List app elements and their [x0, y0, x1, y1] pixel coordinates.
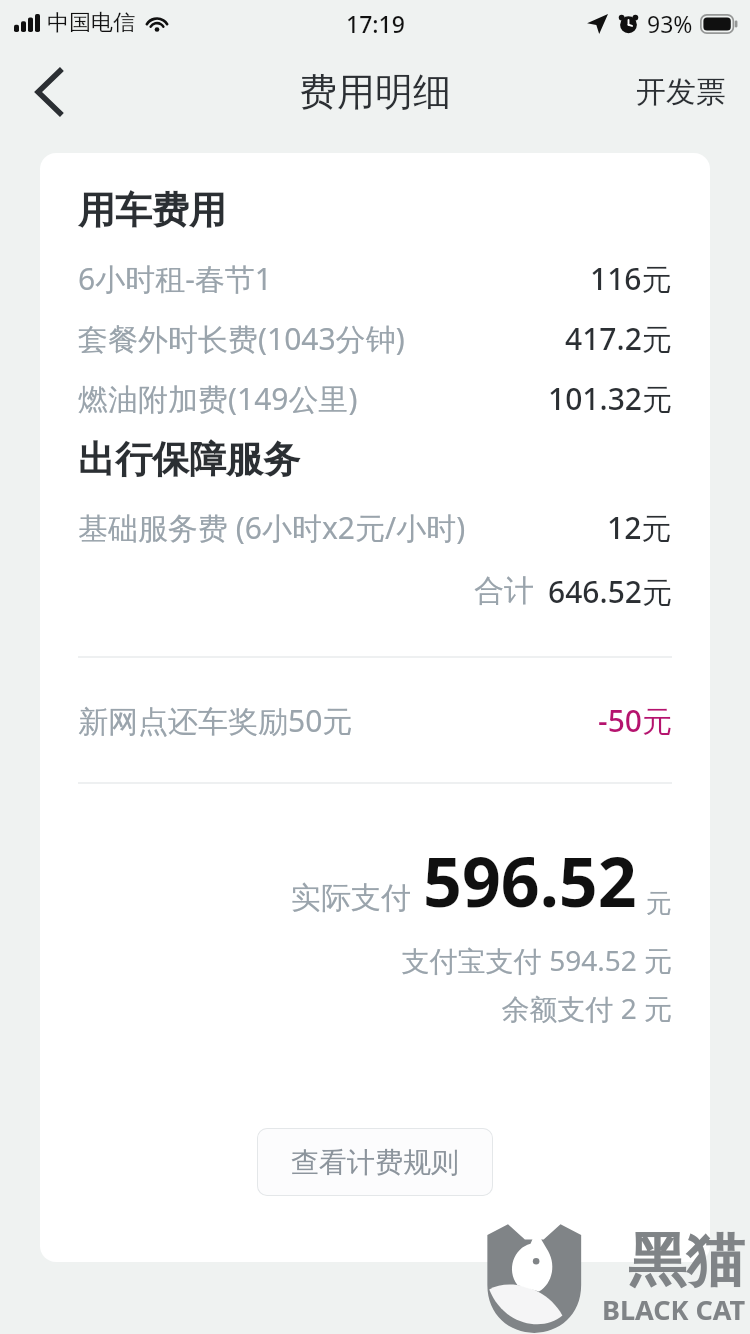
staticText: -50元 — [598, 700, 672, 741]
staticText: 实际支付 — [291, 879, 411, 917]
staticText: 新网点还车奖励50元 — [78, 700, 598, 741]
staticText: 余额支付 2 元 — [78, 989, 672, 1027]
staticText: 417.2元 — [565, 318, 672, 359]
staticText: 6小时租-春节1 — [78, 258, 580, 299]
staticText: 费用明细 — [299, 68, 451, 116]
staticText: BLACK CAT — [602, 1291, 746, 1328]
staticText: 合计 — [474, 572, 534, 610]
staticText: 查看计费规则 — [291, 1145, 459, 1180]
button[interactable]: Back — [18, 61, 80, 123]
staticText: 中国电信 — [47, 9, 135, 37]
staticText: 116元 — [590, 258, 672, 299]
staticText: 93% — [647, 8, 693, 39]
button[interactable]: 开发票 — [630, 65, 732, 119]
staticText: 用车费用 — [78, 187, 226, 234]
staticText: 596.52 — [423, 834, 637, 927]
staticText: 黑猫 — [628, 1224, 744, 1297]
staticText: 出行保障服务 — [78, 436, 300, 483]
staticText: 开发票 — [636, 73, 726, 111]
staticText: 套餐外时长费(1043分钟) — [78, 318, 555, 359]
button[interactable]: 查看计费规则 — [257, 1128, 493, 1196]
staticText: 基础服务费 (6小时x2元/小时) — [78, 507, 597, 548]
staticText: 101.32元 — [548, 378, 672, 419]
staticText: 12元 — [607, 507, 672, 548]
staticText: 支付宝支付 594.52 元 — [78, 941, 672, 979]
staticText: 646.52元 — [548, 571, 672, 611]
staticText: 元 — [646, 887, 672, 920]
staticText: 燃油附加费(149公里) — [78, 378, 538, 419]
staticText: 17:19 — [346, 8, 405, 39]
